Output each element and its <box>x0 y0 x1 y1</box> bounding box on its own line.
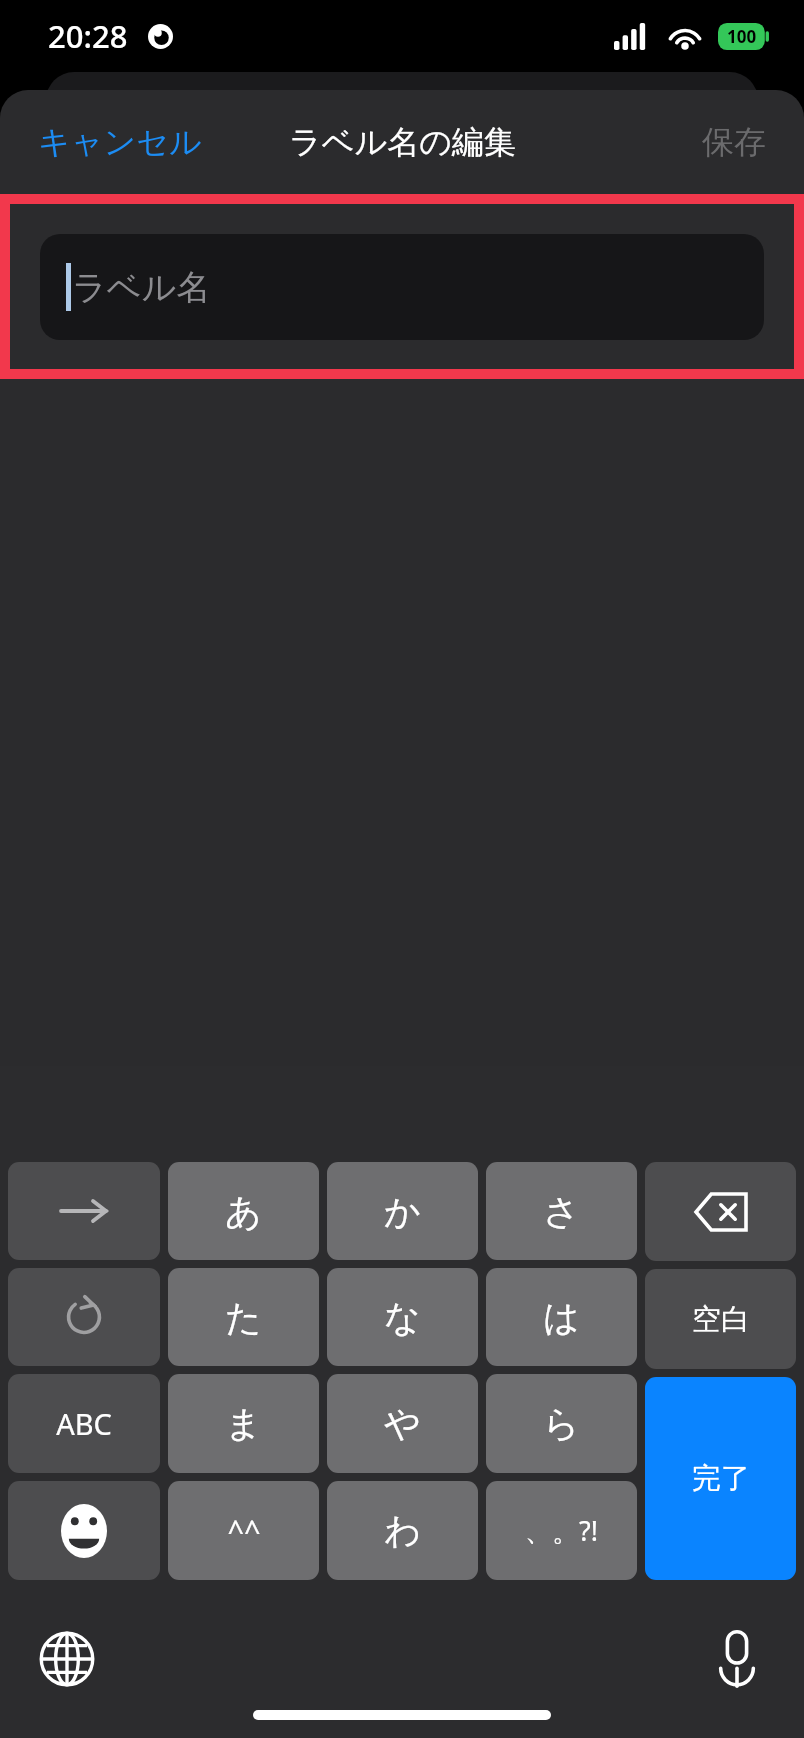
staticText: た <box>225 1295 262 1340</box>
button[interactable]: 完了 <box>645 1377 796 1580</box>
staticText: 100 <box>727 25 757 48</box>
button[interactable]: ラベル名 <box>40 234 764 340</box>
staticText: は <box>543 1295 580 1340</box>
staticText: ま <box>225 1401 262 1446</box>
staticText: 保存 <box>702 122 766 162</box>
staticText: さ <box>543 1189 580 1234</box>
button[interactable]: キャンセル <box>0 104 240 180</box>
staticText: 20:28 <box>48 15 128 57</box>
button[interactable]: さ <box>486 1162 637 1260</box>
button[interactable]: た <box>168 1268 319 1366</box>
staticText: 、。?! <box>525 1512 598 1549</box>
button[interactable]: や <box>327 1374 478 1473</box>
button[interactable]: Delete <box>645 1162 796 1261</box>
button[interactable]: ら <box>486 1374 637 1473</box>
button[interactable]: わ <box>327 1481 478 1580</box>
button[interactable]: Next <box>8 1162 160 1260</box>
staticText: か <box>384 1189 421 1234</box>
staticText: 完了 <box>692 1460 750 1497</box>
button[interactable]: ABC <box>8 1374 160 1473</box>
staticText: ラベル名 <box>72 266 211 309</box>
staticText: ラベル名の編集 <box>289 122 516 162</box>
button[interactable]: Undo <box>8 1268 160 1366</box>
button[interactable]: な <box>327 1268 478 1366</box>
button[interactable]: 、。?! <box>486 1481 637 1580</box>
button[interactable]: ^^ <box>168 1481 319 1580</box>
staticText: や <box>384 1401 421 1446</box>
staticText: キャンセル <box>38 122 202 162</box>
button[interactable]: あ <box>168 1162 319 1260</box>
button[interactable]: Change keyboard <box>26 1618 108 1700</box>
button[interactable]: 空白 <box>645 1269 796 1369</box>
button[interactable]: か <box>327 1162 478 1260</box>
staticText: あ <box>225 1189 262 1234</box>
button[interactable]: Emoji <box>8 1481 160 1580</box>
button[interactable]: は <box>486 1268 637 1366</box>
staticText: わ <box>384 1508 421 1553</box>
staticText: ABC <box>56 1404 112 1443</box>
staticText: 空白 <box>692 1301 750 1338</box>
button[interactable]: ま <box>168 1374 319 1473</box>
staticText: ら <box>543 1401 580 1446</box>
staticText: ^^ <box>227 1511 261 1550</box>
staticText: な <box>384 1295 421 1340</box>
button[interactable]: 保存 <box>664 104 804 180</box>
button[interactable]: Dictation <box>696 1618 778 1700</box>
